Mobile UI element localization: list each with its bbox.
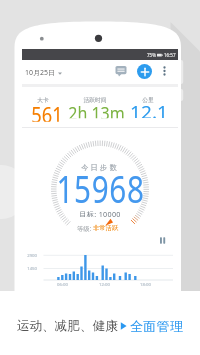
staticText: 公里 (142, 96, 154, 103)
button[interactable] (137, 64, 152, 79)
staticText: 2900 (27, 252, 37, 258)
staticText: 1450 (27, 265, 37, 271)
button[interactable] (157, 235, 168, 246)
staticText: 75% (147, 52, 156, 58)
button[interactable] (159, 64, 170, 79)
staticText: 目标: 10000 (79, 209, 121, 217)
staticText: 非常活跃 (93, 224, 119, 232)
staticText: 15968 (56, 162, 145, 204)
staticText: 16:57 (164, 52, 176, 58)
staticText: 10月25日 (25, 68, 56, 78)
staticText: 561 (31, 100, 63, 122)
staticText: 12:00 (99, 281, 110, 287)
button[interactable]: 运动、减肥、健康 (0, 316, 200, 336)
button[interactable]: 10月25日 (25, 68, 62, 78)
staticText: 等级: (77, 224, 93, 232)
staticText: 大卡 (37, 96, 49, 103)
staticText: 06:00 (57, 281, 68, 287)
staticText: 活跃时间 (83, 96, 107, 103)
staticText: 运动、减肥、健康 (17, 318, 118, 334)
staticText: 今日步数 (81, 163, 119, 172)
button[interactable] (114, 64, 128, 78)
staticText: 2h 13m (68, 100, 125, 118)
staticText: 18:00 (140, 281, 151, 287)
staticText: 全面管理 (130, 318, 184, 334)
staticText: 12.1 (130, 100, 168, 118)
